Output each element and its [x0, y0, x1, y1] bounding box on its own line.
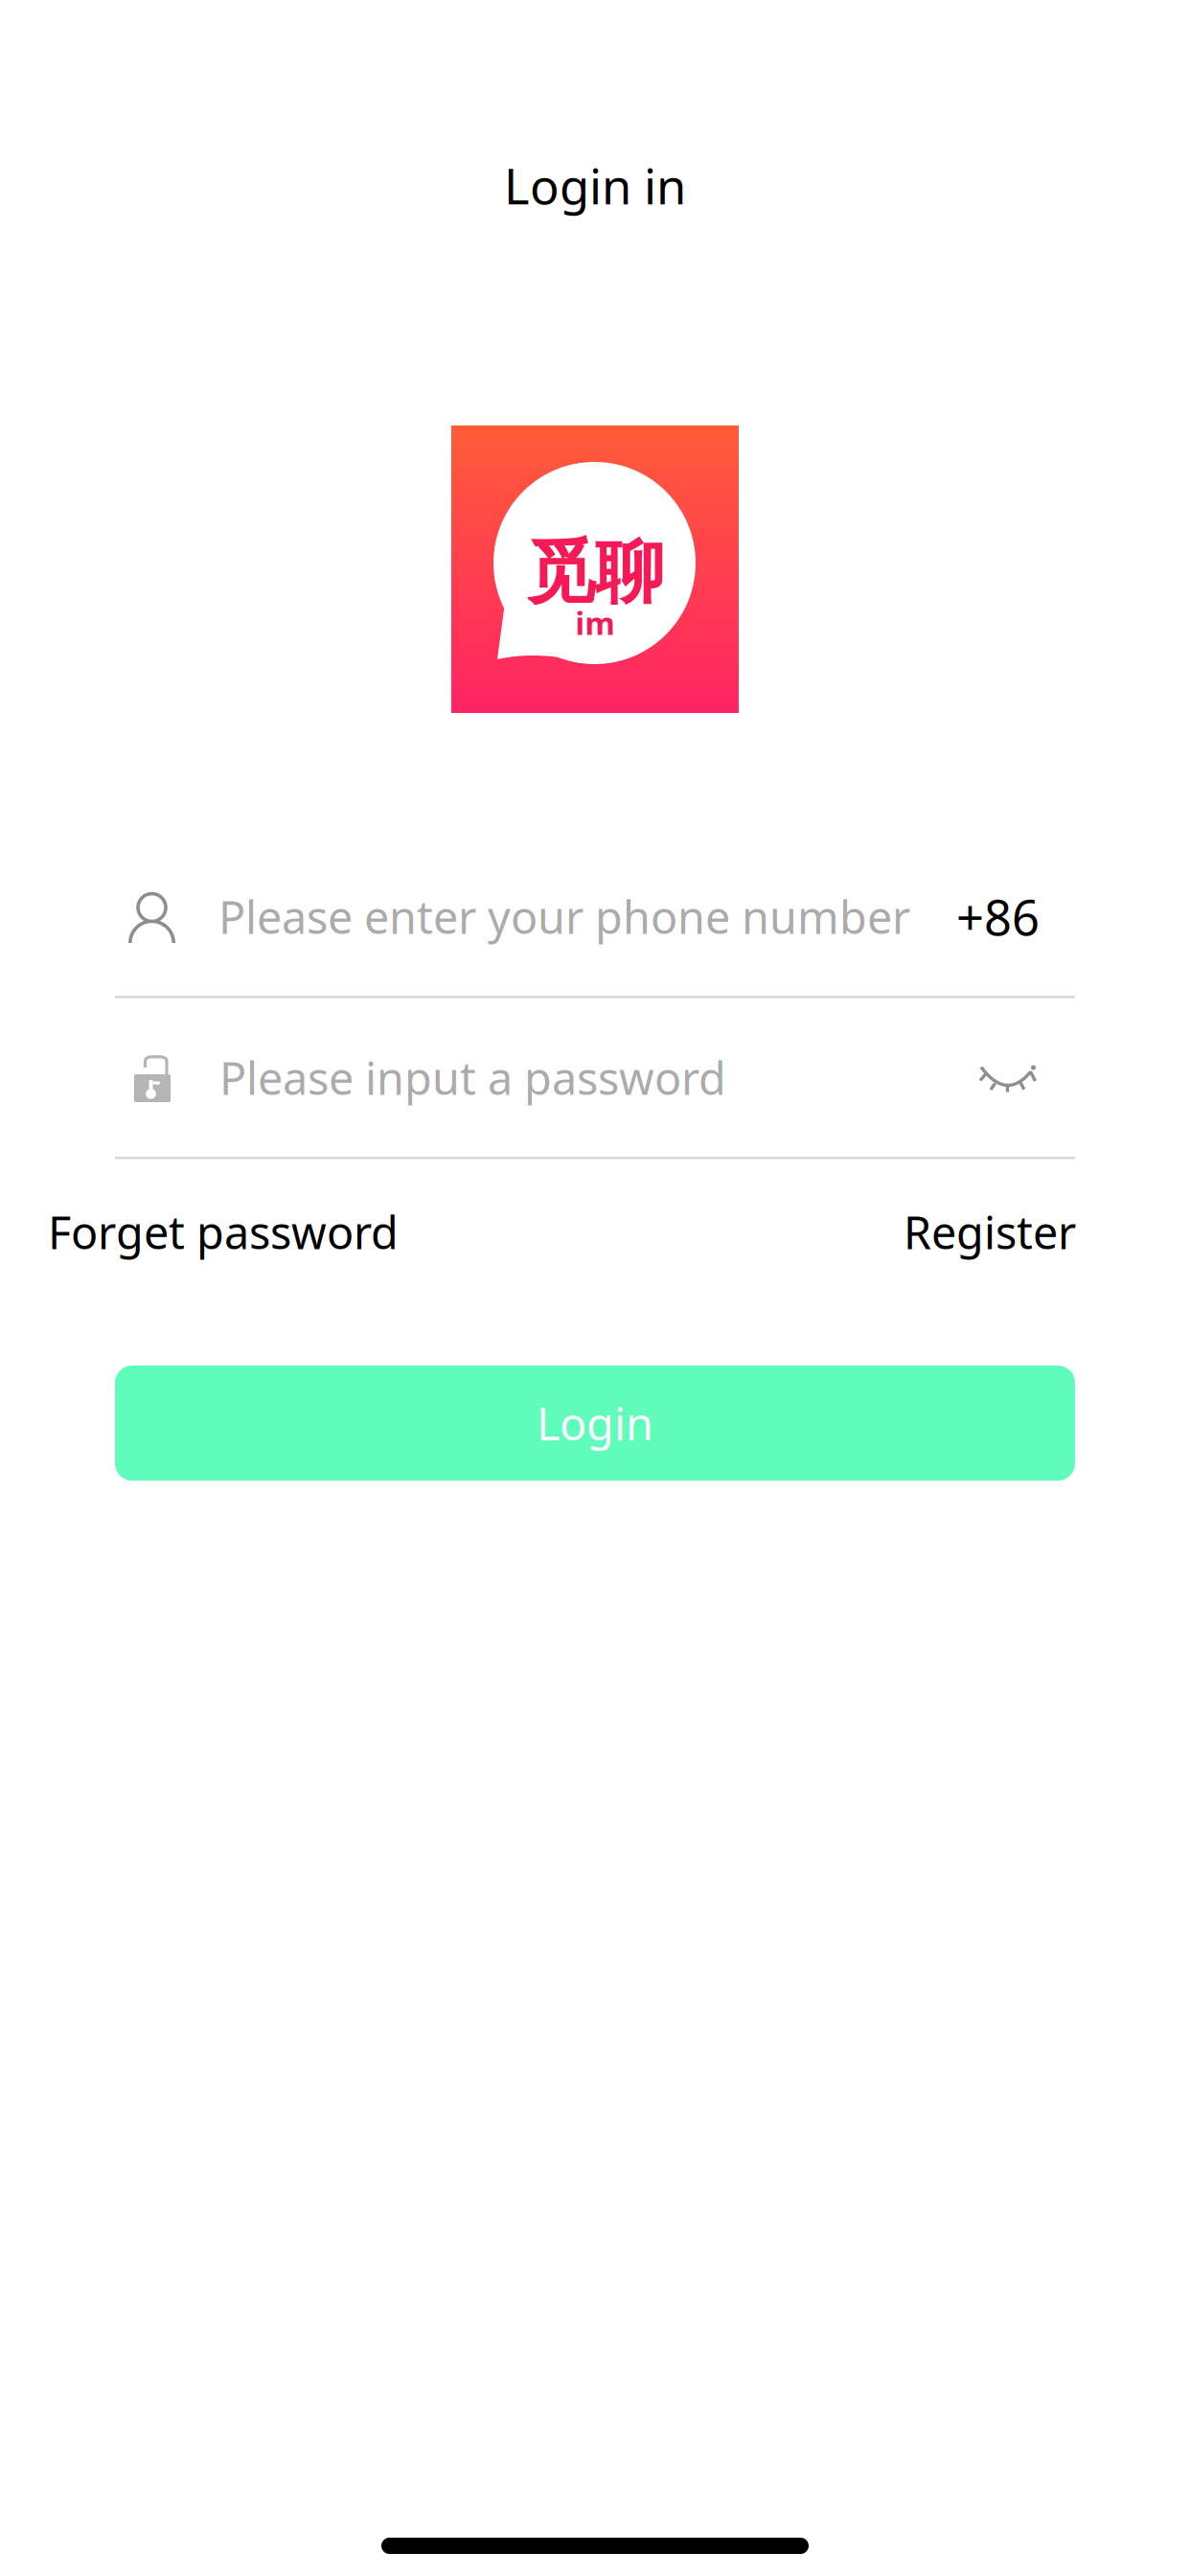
button[interactable]: Register: [904, 1203, 1076, 1261]
button[interactable]: Show password: [990, 1048, 1045, 1107]
staticText: 觅聊: [526, 530, 664, 615]
staticText: Login: [537, 1393, 653, 1453]
button[interactable]: Please input a password: [134, 1048, 726, 1107]
staticText: Please enter your phone number: [218, 887, 910, 946]
staticText: Login in: [504, 153, 686, 218]
staticText: Forget password: [48, 1202, 399, 1262]
staticText: Please input a password: [219, 1048, 726, 1107]
button[interactable]: Please enter your phone number: [128, 887, 910, 946]
button[interactable]: +86: [956, 887, 1040, 946]
staticText: Register: [904, 1202, 1076, 1262]
button[interactable]: Forget password: [48, 1203, 399, 1261]
button[interactable]: Login: [115, 1366, 1075, 1481]
staticText: +86: [956, 884, 1040, 949]
staticText: im: [575, 603, 615, 643]
